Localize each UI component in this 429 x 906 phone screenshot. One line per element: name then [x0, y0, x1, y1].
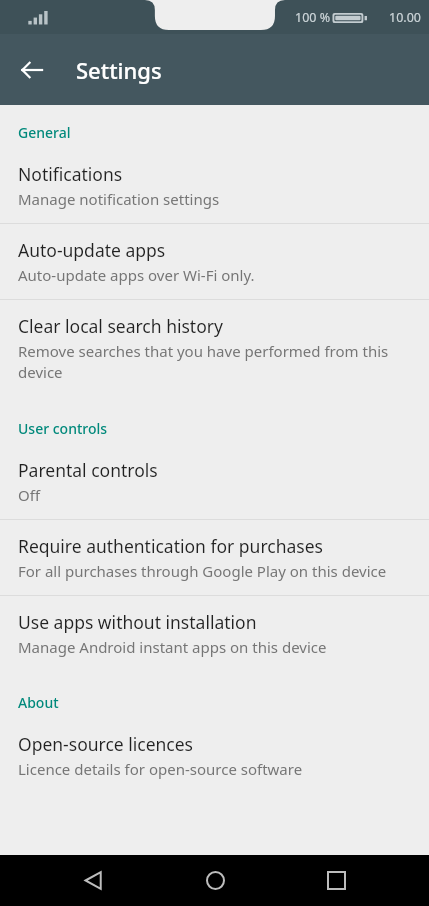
staticText: Remove searches that you have performed … [18, 341, 389, 383]
button[interactable]: Notifications [0, 148, 429, 223]
button[interactable]: Use apps without installation [0, 596, 429, 671]
button[interactable]: Parental controls [0, 444, 429, 519]
staticText: Licence details for open-source software [18, 759, 303, 779]
staticText: Notifications [18, 162, 123, 186]
button[interactable]: Recent apps [308, 855, 364, 906]
staticText: Manage notification settings [18, 189, 220, 209]
staticText: Manage Android instant apps on this devi… [18, 637, 327, 657]
staticText: Auto-update apps [18, 238, 166, 262]
button[interactable]: Back [65, 855, 121, 906]
staticText: Require authentication for purchases [18, 534, 323, 558]
button[interactable]: Clear local search history [0, 300, 429, 397]
staticText: Off [18, 485, 41, 505]
staticText: Auto-update apps over Wi-Fi only. [18, 265, 255, 285]
staticText: About [18, 693, 59, 712]
staticText: User controls [18, 419, 108, 438]
staticText: Parental controls [18, 458, 158, 482]
staticText: Clear local search history [18, 314, 223, 338]
button[interactable]: Auto-update apps [0, 224, 429, 299]
staticText: For all purchases through Google Play on… [18, 561, 387, 581]
staticText: Open-source licences [18, 732, 193, 756]
button[interactable]: Back [8, 46, 56, 94]
staticText: General [18, 123, 71, 142]
staticText: 10.00 [389, 9, 421, 26]
staticText: Use apps without installation [18, 610, 257, 634]
button[interactable]: Open-source licences [0, 718, 429, 793]
staticText: Settings [76, 55, 162, 85]
button[interactable]: Home [187, 855, 243, 906]
staticText: 100 % [295, 9, 331, 26]
button[interactable]: Require authentication for purchases [0, 520, 429, 595]
